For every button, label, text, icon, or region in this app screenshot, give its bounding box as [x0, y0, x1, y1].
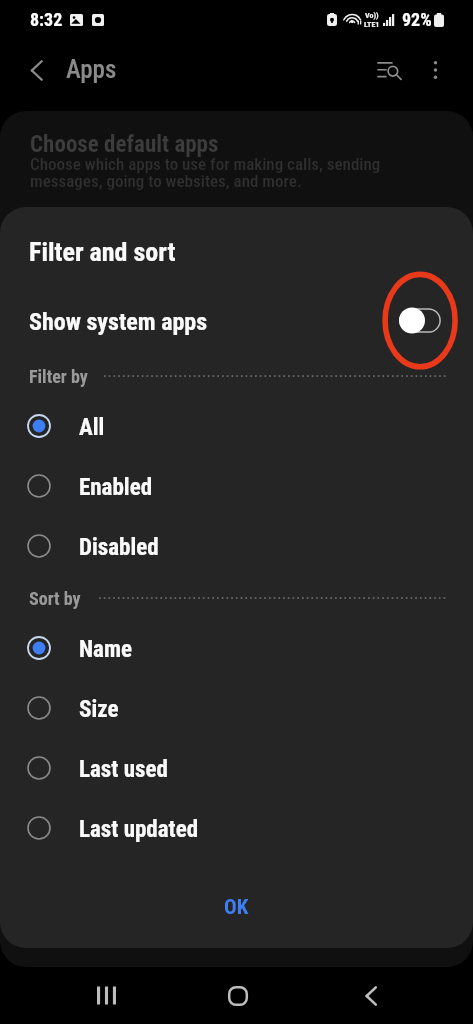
staticText: Last updated [79, 816, 199, 843]
button[interactable]: Recent apps [66, 967, 146, 1024]
staticText: Apps [66, 55, 117, 84]
button[interactable]: Search [366, 46, 414, 94]
staticText: Last used [79, 756, 168, 783]
staticText: 92% [402, 9, 432, 30]
button[interactable]: Show system apps [399, 308, 441, 333]
button[interactable]: OK [0, 880, 473, 934]
button[interactable]: Disabled [0, 516, 473, 576]
button[interactable]: Last used [0, 738, 473, 798]
staticText: Size [79, 696, 119, 723]
staticText: LTE1 [364, 20, 380, 29]
button[interactable]: All [0, 396, 473, 456]
button[interactable]: Last updated [0, 798, 473, 858]
button[interactable]: Navigate up [12, 46, 60, 94]
staticText: Sort by [29, 588, 81, 609]
staticText: Enabled [79, 474, 153, 501]
staticText: Choose which apps to use for making call… [30, 154, 449, 191]
button[interactable]: More options [421, 46, 449, 94]
button[interactable]: Size [0, 678, 473, 738]
button[interactable]: Enabled [0, 456, 473, 516]
button[interactable]: Back [331, 967, 411, 1024]
staticText: Name [79, 636, 132, 663]
staticText: Vo)) [365, 11, 379, 20]
staticText: Filter by [29, 366, 88, 387]
button[interactable]: Name [0, 618, 473, 678]
button[interactable]: Show system apps [0, 293, 473, 347]
staticText: Show system apps [29, 308, 208, 336]
staticText: OK [224, 895, 249, 920]
staticText: 8:32 [30, 9, 63, 30]
staticText: Filter and sort [29, 237, 176, 267]
staticText: Choose default apps [30, 131, 219, 158]
staticText: All [79, 414, 105, 441]
button[interactable]: Home [198, 967, 278, 1024]
button[interactable]: Choose default apps [0, 111, 473, 967]
staticText: Disabled [79, 534, 159, 561]
